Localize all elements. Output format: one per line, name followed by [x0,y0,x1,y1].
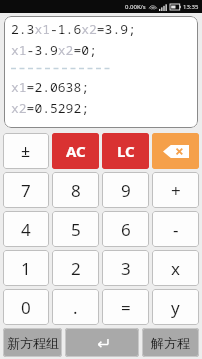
staticText: - [173,218,179,241]
staticText: 5 [71,218,81,241]
staticText: 解方程 [151,335,190,351]
staticText: 6 [121,218,131,241]
staticText: 7 [21,179,31,202]
button[interactable]: 新方程组 [3,328,62,357]
staticText: ± [21,140,31,162]
button[interactable]: = [102,289,149,325]
button[interactable]: - [152,211,199,247]
staticText: x1=2.0638; [11,78,90,96]
staticText: = [121,296,131,319]
staticText: . [73,296,78,319]
button[interactable]: 3 [102,250,149,286]
staticText: y [171,296,180,319]
button[interactable]: 5 [52,211,99,247]
button[interactable]: 2 [52,250,99,286]
button[interactable]: Enter [65,328,139,357]
staticText: 8 [71,179,81,202]
button[interactable]: Backspace [152,133,199,169]
staticText: 1 [21,257,31,280]
staticText: 9 [121,179,131,202]
button[interactable]: 7 [3,172,49,208]
button[interactable]: AC [52,133,99,169]
button[interactable]: 9 [102,172,149,208]
button[interactable]: 0 [3,289,49,325]
button[interactable]: . [52,289,99,325]
button[interactable]: 解方程 [142,328,199,357]
button[interactable]: 2.3x1-1.6x2=3.9; [4,16,198,128]
button[interactable]: 4 [3,211,49,247]
staticText: x2=0.5292; [11,99,90,117]
staticText: 3 [121,257,131,280]
staticText: 新方程组 [7,335,59,351]
staticText: 2 [71,257,81,280]
button[interactable]: y [152,289,199,325]
button[interactable]: 6 [102,211,149,247]
button[interactable]: ± [3,133,49,169]
button[interactable]: 1 [3,250,49,286]
button[interactable]: LC [102,133,149,169]
staticText: LC [117,141,135,161]
staticText: + [171,179,181,202]
staticText: 2.3x1-1.6x2=3.9; [11,20,136,38]
button[interactable]: 8 [52,172,99,208]
button[interactable]: x [152,250,199,286]
button[interactable]: + [152,172,199,208]
staticText: 0.00K/s [125,3,146,11]
staticText: 4 [21,218,31,241]
staticText: AC [66,141,86,161]
staticText: x1-3.9x2=0; [11,41,97,59]
staticText: x [171,257,180,280]
staticText: 0 [21,296,31,319]
staticText: 13:35 [183,3,199,11]
